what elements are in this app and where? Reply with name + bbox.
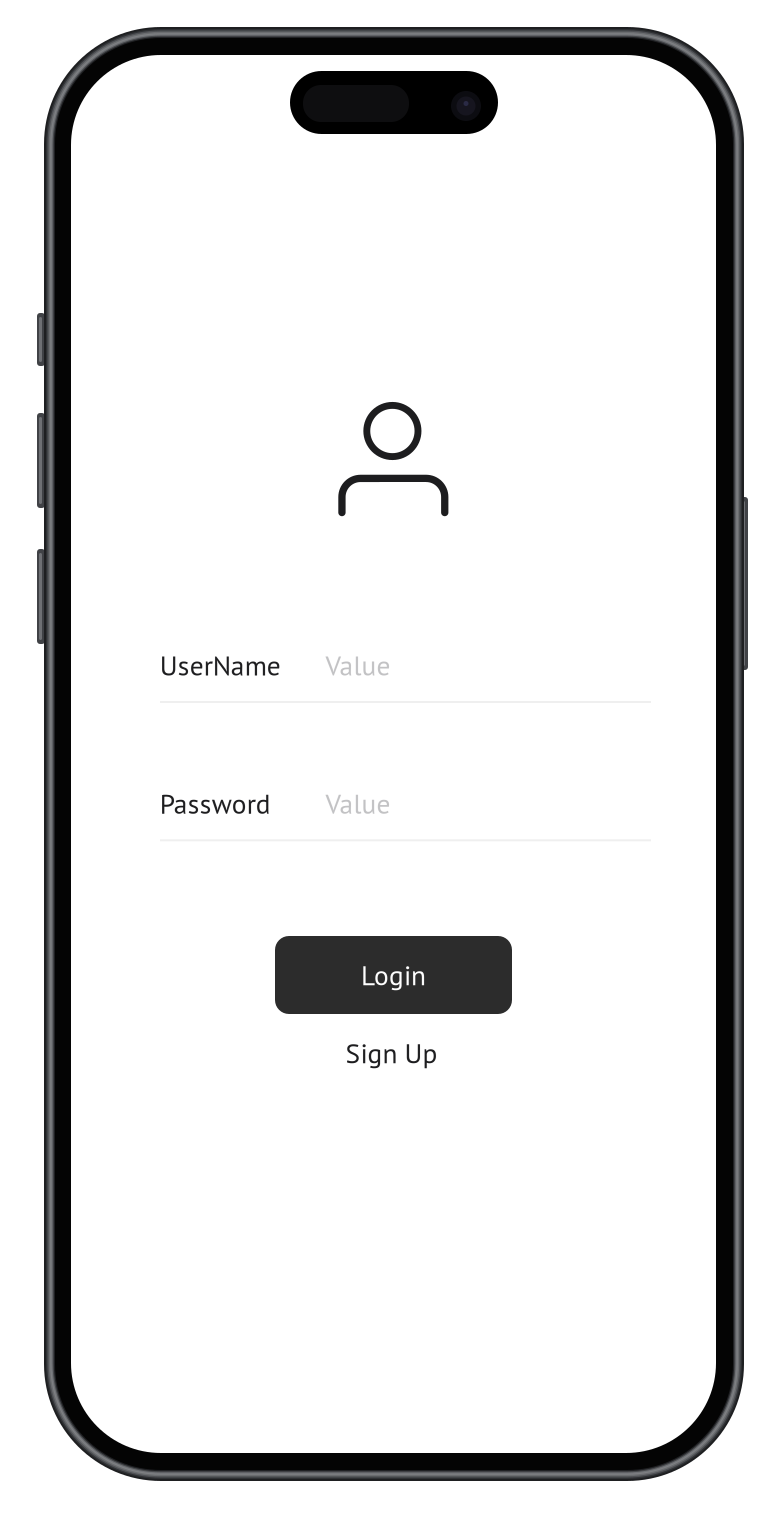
staticText: Password [160, 786, 271, 821]
button[interactable]: Sign Up [321, 1031, 461, 1075]
staticText: Value [325, 786, 390, 821]
staticText: Login [361, 957, 426, 993]
staticText: Sign Up [345, 1035, 437, 1071]
button[interactable]: Login [275, 936, 512, 1014]
staticText: Value [325, 648, 390, 683]
staticText: UserName [160, 648, 281, 683]
